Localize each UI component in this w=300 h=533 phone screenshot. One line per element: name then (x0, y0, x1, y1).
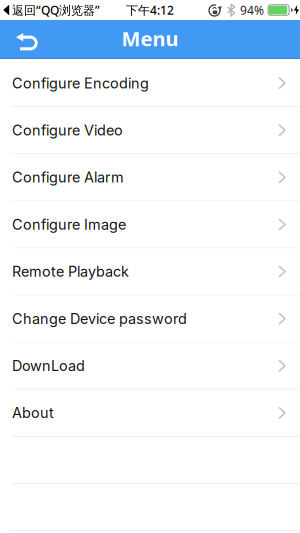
button[interactable]: About (0, 390, 300, 437)
button[interactable]: Remote Playback (0, 248, 300, 295)
button[interactable]: DownLoad (0, 343, 300, 390)
staticText: Remote Playback (12, 263, 129, 280)
staticText: Configure Video (12, 121, 123, 139)
staticText: Change Device password (12, 310, 187, 327)
staticText: 94% (240, 2, 264, 18)
button[interactable]: Configure Encoding (0, 60, 300, 107)
button[interactable]: Configure Video (0, 107, 300, 154)
staticText: 返回“QQ浏览器” (12, 2, 100, 18)
button[interactable]: Back (0, 20, 37, 59)
button[interactable]: Configure Alarm (0, 154, 300, 201)
staticText: About (12, 404, 54, 421)
button[interactable]: 返回QQ浏览器 (0, 0, 100, 20)
staticText: Configure Image (12, 216, 126, 233)
button[interactable]: Configure Image (0, 201, 300, 248)
staticText: DownLoad (12, 357, 85, 374)
button[interactable]: Change Device password (0, 295, 300, 343)
staticText: Menu (121, 25, 178, 52)
staticText: Configure Alarm (12, 169, 124, 186)
staticText: 下午4:12 (126, 2, 174, 18)
staticText: Configure Encoding (12, 74, 149, 92)
